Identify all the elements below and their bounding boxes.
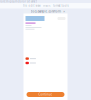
staticText: lorem ipsum dolor sit amet: [0, 0, 37, 3]
button[interactable]: Continue: [26, 92, 64, 97]
button[interactable]: Close: [62, 10, 65, 13]
staticText: ✕: [63, 10, 65, 13]
staticText: docs.example.com/form: [30, 10, 60, 13]
staticText: Continue: [38, 93, 52, 96]
staticText: format tools: [52, 4, 68, 7]
staticText: insert: [42, 4, 50, 7]
staticText: file edit view: [22, 4, 40, 7]
